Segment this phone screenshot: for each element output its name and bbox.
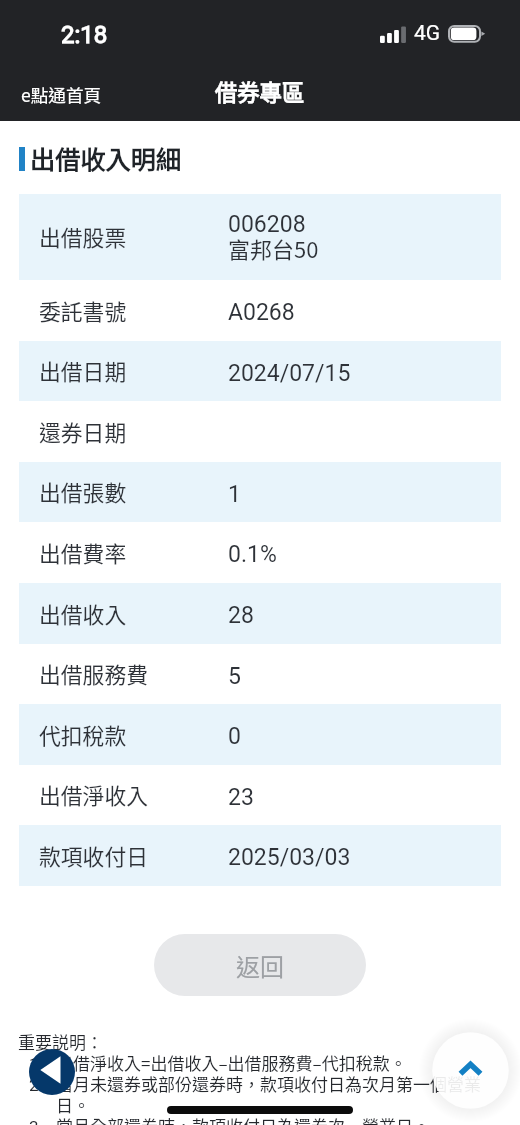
staticText: 3. xyxy=(29,1116,44,1125)
staticText: 返回 xyxy=(236,948,284,983)
staticText: 借券專區 xyxy=(215,75,305,107)
button[interactable]: 出借收入 xyxy=(19,583,501,644)
staticText: 1. xyxy=(29,1053,44,1074)
staticText: 006208 xyxy=(228,211,306,238)
button[interactable]: 出借服務費 xyxy=(19,644,501,704)
button[interactable]: e點通首頁 xyxy=(21,82,102,107)
button[interactable]: 出借股票 xyxy=(19,194,501,280)
staticText: 出借淨收入=出借收入–出借服務費–代扣稅款。 xyxy=(56,1053,407,1074)
staticText: 4G xyxy=(414,21,441,46)
staticText: 還券日期 xyxy=(39,416,127,448)
staticText: 23 xyxy=(228,784,254,811)
button[interactable]: Scroll to top xyxy=(418,1018,520,1123)
staticText: A0268 xyxy=(228,299,295,326)
staticText: 1 xyxy=(228,481,241,508)
staticText: 當月全部還券時，款項收付日為還券次一營業日。 xyxy=(56,1116,430,1125)
button[interactable]: 出借費率 xyxy=(19,522,501,583)
staticText: 2024/07/15 xyxy=(228,360,351,387)
staticText: 當月未還券或部份還券時，款項收付日為次月第一個營業日。 xyxy=(56,1074,501,1116)
staticText: 出借費率 xyxy=(39,537,127,569)
button[interactable]: 代扣稅款 xyxy=(19,704,501,765)
staticText: 出借淨收入 xyxy=(39,779,148,811)
staticText: 0.1% xyxy=(228,541,277,568)
staticText: 出借收入明細 xyxy=(30,140,182,176)
staticText: 重要説明： xyxy=(18,1032,103,1053)
staticText: 2. xyxy=(29,1074,44,1095)
staticText: 出借股票 xyxy=(39,221,127,253)
staticText: e點通首頁 xyxy=(21,82,102,107)
staticText: 款項收付日 xyxy=(39,840,148,872)
button[interactable]: 出借日期 xyxy=(19,341,501,401)
staticText: 出借服務費 xyxy=(39,658,148,690)
staticText: 0 xyxy=(228,723,241,750)
button[interactable]: 委託書號 xyxy=(19,280,501,341)
button[interactable]: 還券日期 xyxy=(19,401,501,462)
staticText: 富邦台50 xyxy=(228,232,319,264)
staticText: 28 xyxy=(228,602,254,629)
button[interactable]: 返回 xyxy=(154,934,366,996)
staticText: 出借收入 xyxy=(39,598,127,630)
button[interactable]: 款項收付日 xyxy=(19,825,501,886)
staticText: 2:18 xyxy=(61,21,108,49)
staticText: 出借日期 xyxy=(39,355,127,387)
staticText: 5 xyxy=(228,663,241,690)
staticText: 出借張數 xyxy=(39,476,127,508)
button[interactable]: Back xyxy=(29,1049,75,1095)
staticText: 委託書號 xyxy=(39,295,127,327)
staticText: 2025/03/03 xyxy=(228,844,351,871)
button[interactable]: 出借淨收入 xyxy=(19,765,501,825)
button[interactable]: 出借張數 xyxy=(19,462,501,522)
staticText: 代扣稅款 xyxy=(39,719,127,751)
